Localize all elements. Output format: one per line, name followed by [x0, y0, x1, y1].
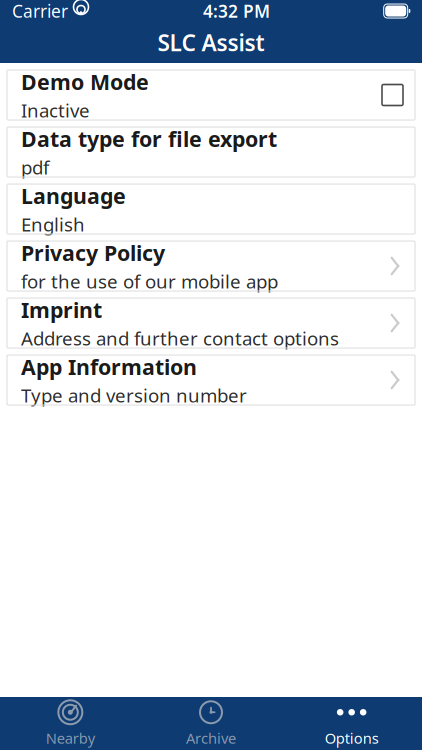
button[interactable]: App Information	[7, 355, 415, 405]
button[interactable]: Archive	[141, 697, 281, 750]
button[interactable]: Nearby	[0, 697, 141, 750]
staticText: 4:32 PM	[203, 0, 270, 22]
staticText: Carrier	[12, 0, 68, 22]
button[interactable]: Demo Mode	[7, 70, 415, 120]
staticText: Imprint	[21, 295, 102, 324]
button[interactable]: Language	[7, 184, 415, 234]
staticText: SLC Assist	[157, 27, 264, 57]
button[interactable]: Privacy Policy	[7, 241, 415, 291]
button[interactable]: Data type for file export	[7, 127, 415, 177]
button[interactable]: Options	[281, 697, 422, 750]
staticText: for the use of our mobile app	[21, 269, 278, 294]
staticText: Nearby	[46, 728, 95, 748]
staticText: English	[21, 212, 85, 237]
staticText: App Information	[21, 352, 197, 381]
button[interactable]: Imprint	[7, 298, 415, 348]
staticText: Language	[21, 181, 126, 210]
staticText: Privacy Policy	[21, 238, 165, 267]
staticText: Options	[325, 728, 379, 748]
staticText: Inactive	[21, 98, 90, 123]
staticText: Type and version number	[21, 383, 247, 408]
staticText: Archive	[186, 728, 236, 748]
staticText: pdf	[21, 155, 49, 180]
staticText: Address and further contact options	[21, 326, 339, 351]
staticText: Data type for file export	[21, 124, 277, 153]
staticText: Demo Mode	[21, 67, 149, 96]
